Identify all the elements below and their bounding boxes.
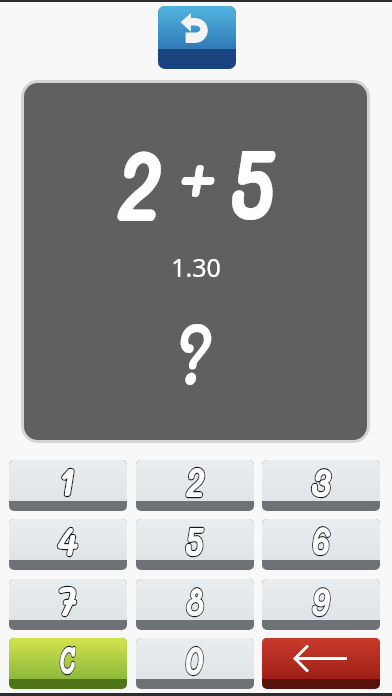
staticText: 8 — [186, 579, 205, 626]
staticText: C — [59, 638, 75, 684]
button[interactable]: 7 — [9, 579, 127, 630]
button[interactable]: 9 — [262, 579, 380, 630]
button[interactable]: 0 — [136, 638, 254, 689]
staticText: 4 — [57, 519, 79, 566]
staticText: 2 — [186, 460, 205, 507]
staticText: 7 — [57, 579, 77, 626]
staticText: 5 — [230, 115, 275, 245]
staticText: 1 — [58, 460, 75, 507]
staticText: + — [178, 127, 217, 222]
staticText: 6 — [312, 519, 330, 566]
staticText: ? — [173, 297, 212, 406]
staticText: C — [59, 638, 75, 684]
button[interactable]: C — [9, 638, 127, 689]
button[interactable]: 2 — [136, 460, 254, 511]
staticText: 9 — [312, 579, 330, 626]
staticText: 7 — [57, 579, 77, 626]
staticText: 4 — [57, 519, 79, 566]
staticText: 5 — [185, 519, 204, 566]
staticText: 3 — [311, 460, 331, 507]
staticText: 9 — [312, 579, 330, 626]
staticText: 0 — [185, 638, 203, 686]
button[interactable]: 6 — [262, 519, 380, 570]
staticText: 2 — [186, 460, 205, 507]
staticText: 1 — [58, 460, 75, 507]
button[interactable]: Backspace — [262, 638, 380, 689]
button[interactable]: 3 — [262, 460, 380, 511]
staticText: 2 — [117, 116, 161, 248]
staticText: 5 — [185, 519, 204, 566]
button[interactable]: 8 — [136, 579, 254, 630]
button[interactable]: 5 — [136, 519, 254, 570]
staticText: 6 — [312, 519, 330, 566]
staticText: 3 — [311, 460, 331, 507]
staticText: 8 — [186, 579, 205, 626]
button[interactable]: Back — [158, 6, 236, 69]
staticText: 0 — [185, 638, 203, 686]
staticText: 1.30 — [171, 250, 221, 284]
button[interactable]: 4 — [9, 519, 127, 570]
button[interactable]: 1 — [9, 460, 127, 511]
